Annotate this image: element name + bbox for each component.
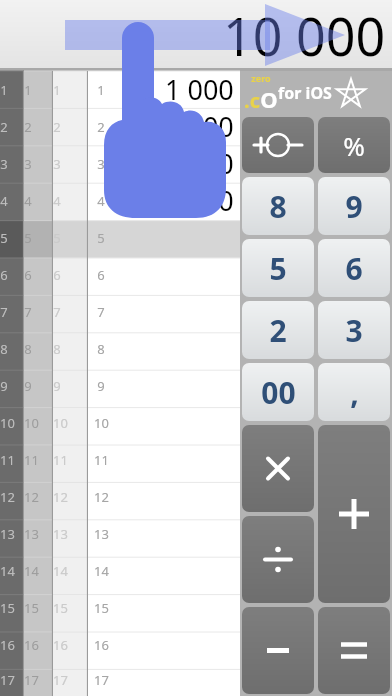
staticText: 7: [0, 303, 8, 321]
button[interactable]: 1: [88, 71, 240, 108]
staticText: 2: [0, 118, 8, 136]
button[interactable]: 16: [88, 626, 240, 663]
staticText: 9: [97, 377, 105, 395]
staticText: 12: [53, 488, 68, 506]
staticText: 4: [53, 192, 61, 210]
button[interactable]: ,: [318, 363, 390, 421]
staticText: 17: [0, 671, 15, 689]
button[interactable]: Minus: [242, 607, 314, 694]
staticText: for iOS: [278, 82, 332, 104]
button[interactable]: 9: [318, 177, 390, 235]
staticText: 10: [53, 414, 68, 432]
button[interactable]: 13: [88, 515, 240, 552]
staticText: 17: [94, 671, 109, 689]
staticText: 16: [94, 636, 109, 654]
staticText: 1: [24, 81, 32, 99]
staticText: ,: [350, 372, 359, 413]
staticText: 15: [53, 599, 68, 617]
staticText: 8: [269, 186, 287, 227]
staticText: 5: [24, 229, 32, 247]
staticText: 15: [94, 599, 109, 617]
button[interactable]: 15: [88, 589, 240, 626]
staticText: 3: [24, 155, 32, 173]
staticText: 15: [24, 599, 39, 617]
staticText: 10: [24, 414, 39, 432]
staticText: 7: [97, 303, 105, 321]
staticText: 4: [97, 192, 105, 210]
staticText: 6: [24, 266, 32, 284]
staticText: 12: [24, 488, 39, 506]
staticText: 9: [53, 377, 61, 395]
button[interactable]: Plus minus sign: [242, 117, 314, 173]
button[interactable]: Equals: [318, 607, 390, 694]
button[interactable]: 6: [88, 256, 240, 293]
staticText: 3 000: [165, 145, 234, 182]
staticText: 6: [97, 266, 105, 284]
button[interactable]: 17: [88, 663, 240, 696]
staticText: 1 000: [165, 71, 234, 108]
staticText: 6: [53, 266, 61, 284]
staticText: 4: [0, 192, 8, 210]
staticText: 10 000: [223, 0, 386, 68]
staticText: .c: [244, 87, 260, 114]
staticText: 4 000: [165, 182, 234, 219]
button[interactable]: 10: [88, 404, 240, 441]
staticText: 7: [53, 303, 61, 321]
staticText: 10: [94, 414, 109, 432]
staticText: O: [260, 84, 278, 114]
button[interactable]: 9: [88, 367, 240, 404]
button[interactable]: 11: [88, 441, 240, 478]
staticText: 4: [24, 192, 32, 210]
staticText: %: [343, 128, 365, 163]
button[interactable]: 3: [318, 301, 390, 359]
button[interactable]: 14: [88, 552, 240, 589]
button[interactable]: Plus: [318, 425, 390, 603]
staticText: 17: [53, 671, 68, 689]
staticText: 13: [0, 525, 15, 543]
button[interactable]: 4: [88, 182, 240, 219]
staticText: 2 000: [165, 108, 234, 145]
staticText: 5: [97, 229, 105, 247]
button[interactable]: 10 000: [0, 0, 392, 68]
staticText: 1: [97, 81, 105, 99]
staticText: 11: [24, 451, 39, 469]
button[interactable]: Multiply: [242, 425, 314, 512]
staticText: 14: [94, 562, 109, 580]
staticText: 00: [261, 372, 296, 413]
button[interactable]: 6: [318, 239, 390, 297]
staticText: 2: [269, 310, 287, 351]
staticText: 2: [53, 118, 61, 136]
staticText: 8: [97, 340, 105, 358]
staticText: 9: [24, 377, 32, 395]
staticText: 5: [0, 229, 8, 247]
staticText: 1: [0, 81, 8, 99]
staticText: 2: [24, 118, 32, 136]
staticText: 12: [94, 488, 109, 506]
staticText: 14: [24, 562, 39, 580]
button[interactable]: 2: [88, 108, 240, 145]
button[interactable]: 7: [88, 293, 240, 330]
staticText: 16: [0, 636, 15, 654]
staticText: 13: [24, 525, 39, 543]
staticText: 6: [0, 266, 8, 284]
staticText: 8: [24, 340, 32, 358]
staticText: 3: [53, 155, 61, 173]
staticText: 2: [97, 118, 105, 136]
staticText: 6: [345, 248, 363, 289]
staticText: 10: [0, 414, 15, 432]
button[interactable]: 00: [242, 363, 314, 421]
staticText: 5: [269, 248, 287, 289]
button[interactable]: 2: [242, 301, 314, 359]
staticText: 16: [24, 636, 39, 654]
button[interactable]: %: [318, 117, 390, 173]
button[interactable]: 12: [88, 478, 240, 515]
button[interactable]: 8: [88, 330, 240, 367]
staticText: zero: [251, 72, 271, 84]
button[interactable]: 5: [88, 219, 240, 256]
staticText: 13: [94, 525, 109, 543]
button[interactable]: 8: [242, 177, 314, 235]
button[interactable]: 3: [88, 145, 240, 182]
button[interactable]: Divide: [242, 516, 314, 603]
staticText: 16: [53, 636, 68, 654]
button[interactable]: 5: [242, 239, 314, 297]
